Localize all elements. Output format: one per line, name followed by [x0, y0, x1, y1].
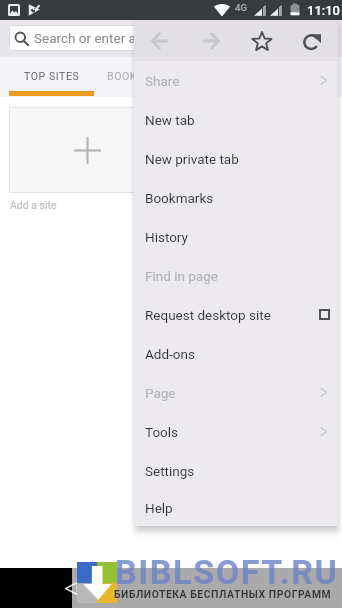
button[interactable]: TOP SITES [0, 57, 103, 92]
staticText: Bookmarks [145, 190, 214, 206]
button[interactable]: Bookmark [236, 21, 287, 61]
button[interactable]: Find in page [134, 256, 338, 295]
staticText: Search or enter address [34, 30, 177, 46]
staticText: Tools [145, 424, 179, 440]
staticText: Add-ons [145, 346, 195, 362]
button[interactable]: Add-ons [134, 334, 338, 373]
staticText: Help [145, 500, 173, 516]
button[interactable]: Settings [134, 451, 338, 490]
button[interactable]: New tab [134, 100, 338, 139]
staticText: Find in page [145, 268, 218, 284]
button[interactable]: BOOKMARKS [98, 57, 185, 92]
staticText: New private tab [145, 151, 239, 167]
staticText: Share [145, 73, 180, 89]
staticText: Page [145, 385, 176, 401]
button[interactable]: Reload [287, 21, 338, 61]
staticText: History [145, 229, 188, 245]
button[interactable]: Page [134, 373, 338, 412]
button[interactable]: Tools [134, 412, 338, 451]
button[interactable]: Bookmarks [134, 178, 338, 217]
button[interactable]: Share [134, 61, 338, 100]
button[interactable]: New private tab [134, 139, 338, 178]
button[interactable]: Forward [185, 21, 236, 61]
button[interactable]: Back [65, 582, 78, 595]
button[interactable]: Search or enter address [9, 25, 334, 51]
staticText: 11:10 [307, 3, 341, 18]
staticText: Request desktop site [145, 307, 271, 323]
button[interactable]: History [134, 217, 338, 256]
staticText: TOP SITES [24, 70, 80, 82]
button[interactable]: Request desktop site [134, 295, 338, 334]
staticText: BIBLSOFT.RU [115, 552, 339, 592]
staticText: Settings [145, 463, 195, 479]
staticText: 4G [235, 2, 247, 13]
button[interactable]: Back [134, 21, 185, 61]
staticText: New tab [145, 112, 195, 128]
staticText: BOOKMARKS [107, 70, 176, 82]
button[interactable]: Help [134, 490, 338, 526]
button[interactable] [9, 107, 165, 193]
staticText: БИБЛИОТЕКА БЕСПЛАТНЫХ ПРОГРАММ [114, 588, 332, 600]
staticText: Add a site [10, 199, 57, 211]
